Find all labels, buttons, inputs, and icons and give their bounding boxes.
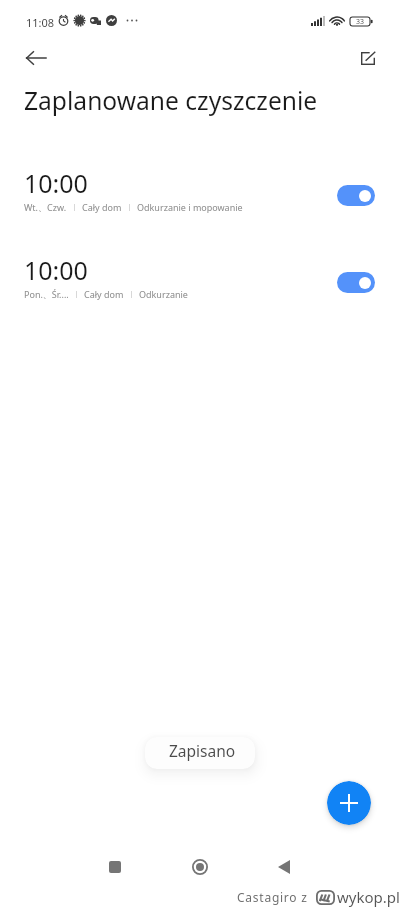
button[interactable]: 10:00 [0,166,400,218]
button[interactable]: Add [327,781,371,825]
staticText: Odkurzanie [139,288,188,300]
staticText: Cały dom [82,201,122,213]
button[interactable]: Zapisano [145,737,255,769]
button[interactable]: 10:00 [0,253,400,305]
button[interactable]: Edit [348,38,388,78]
button[interactable]: Toggle schedule [337,185,375,206]
staticText: wykop.pl [337,887,400,907]
staticText: 10:00 [24,253,88,287]
staticText: Odkurzanie i mopowanie [137,201,243,213]
staticText: Pon.、Śr.... [24,288,69,300]
staticText: Zapisano [169,740,236,761]
button[interactable]: Recents [95,847,135,887]
staticText: 11:08 [26,15,55,30]
button[interactable]: Back [16,38,56,78]
staticText: Zaplanowane czyszczenie [24,84,318,118]
staticText: Cały dom [84,288,124,300]
staticText: 33 [356,17,365,26]
button[interactable]: Back [264,847,304,887]
button[interactable]: Home [180,847,220,887]
staticText: Castagiro z [237,889,308,905]
button[interactable]: Toggle schedule [337,272,375,293]
staticText: Wt.、Czw. [24,201,67,213]
staticText: 10:00 [24,166,88,200]
